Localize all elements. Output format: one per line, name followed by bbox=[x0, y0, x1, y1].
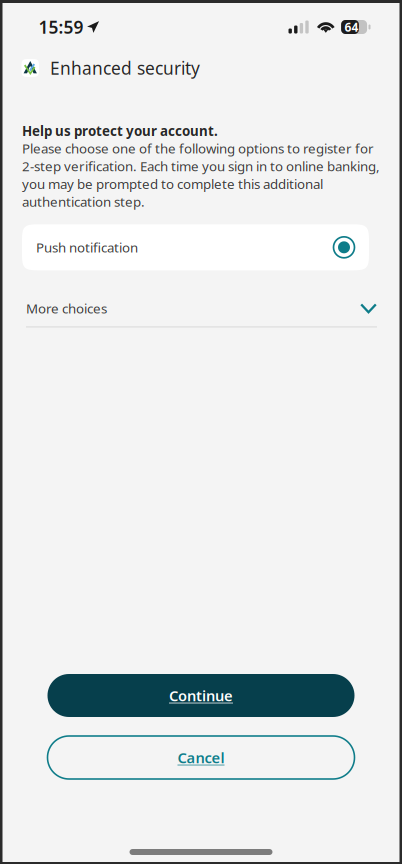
staticText: Push notification bbox=[36, 238, 138, 256]
button[interactable]: Cancel bbox=[47, 736, 354, 779]
button[interactable]: Continue bbox=[47, 674, 354, 717]
staticText: 64 bbox=[344, 19, 358, 35]
button[interactable]: Push notification bbox=[22, 224, 369, 270]
staticText: More choices bbox=[26, 299, 107, 317]
staticText: Continue bbox=[169, 686, 233, 705]
staticText: Help us protect your account. bbox=[22, 122, 218, 140]
button[interactable]: More choices bbox=[26, 290, 377, 327]
staticText: Please choose one of the following optio… bbox=[22, 139, 380, 210]
staticText: Cancel bbox=[177, 748, 224, 767]
staticText: 15:59 bbox=[38, 15, 83, 38]
staticText: Enhanced security bbox=[50, 56, 200, 79]
